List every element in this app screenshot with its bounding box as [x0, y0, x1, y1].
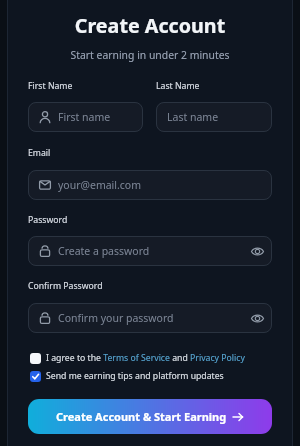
button[interactable]: Last name: [156, 102, 272, 132]
staticText: Last name: [167, 110, 264, 124]
button[interactable]: your@email.com: [28, 170, 272, 200]
button[interactable]: Send me earning tips and platform update…: [28, 370, 272, 382]
staticText: I agree to the Terms of Service and Priv…: [46, 352, 245, 364]
staticText: Password: [28, 214, 68, 226]
staticText: Email: [28, 147, 51, 159]
staticText: Confirm Password: [28, 280, 103, 292]
button[interactable]: Confirm your password: [28, 303, 272, 333]
button[interactable]: First name: [28, 102, 143, 132]
button[interactable]: Create a password: [28, 236, 272, 266]
staticText: Create Account & Start Earning: [56, 409, 227, 424]
staticText: Confirm your password: [58, 311, 251, 325]
staticText: Create Account: [28, 12, 272, 39]
staticText: Last Name: [156, 80, 200, 92]
staticText: Start earning in under 2 minutes: [28, 48, 272, 62]
staticText: Create a password: [58, 244, 251, 258]
staticText: your@email.com: [58, 178, 264, 192]
staticText: First Name: [28, 80, 73, 92]
button[interactable]: I agree to the Terms of Service and Priv…: [28, 352, 272, 364]
button[interactable]: Create Account & Start Earning: [28, 399, 272, 434]
staticText: Send me earning tips and platform update…: [46, 370, 224, 382]
staticText: First name: [58, 110, 135, 124]
